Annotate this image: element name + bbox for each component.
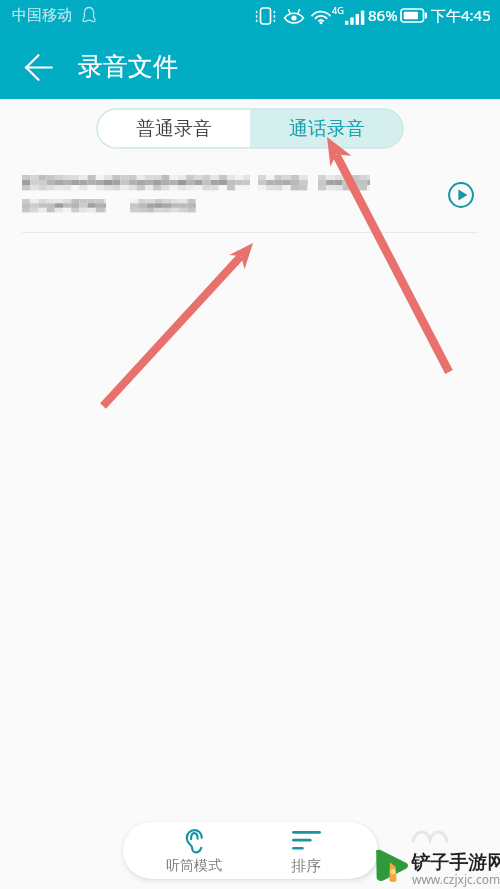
staticText: 铲子手游网 — [411, 851, 500, 875]
staticText: 4G — [332, 4, 344, 16]
staticText: 普通录音 — [136, 117, 212, 141]
staticText: 中国移动 — [12, 6, 72, 25]
button[interactable]: 听筒模式 — [123, 822, 251, 879]
staticText: 下午4:45 — [431, 5, 491, 25]
button[interactable]: Back — [16, 45, 60, 89]
staticText: www.czjxjc.com — [412, 871, 500, 887]
button[interactable]: Play — [0, 163, 500, 233]
staticText: 录音文件 — [78, 51, 178, 82]
staticText: 排序 — [243, 857, 370, 876]
staticText: 86% — [368, 5, 398, 25]
button[interactable]: Play — [447, 181, 475, 209]
staticText: 听筒模式 — [130, 857, 258, 875]
button[interactable]: 通话录音 — [250, 109, 403, 148]
button[interactable]: 普通录音 — [97, 109, 250, 148]
staticText: 通话录音 — [289, 117, 365, 141]
button[interactable]: 排序 — [251, 822, 378, 879]
